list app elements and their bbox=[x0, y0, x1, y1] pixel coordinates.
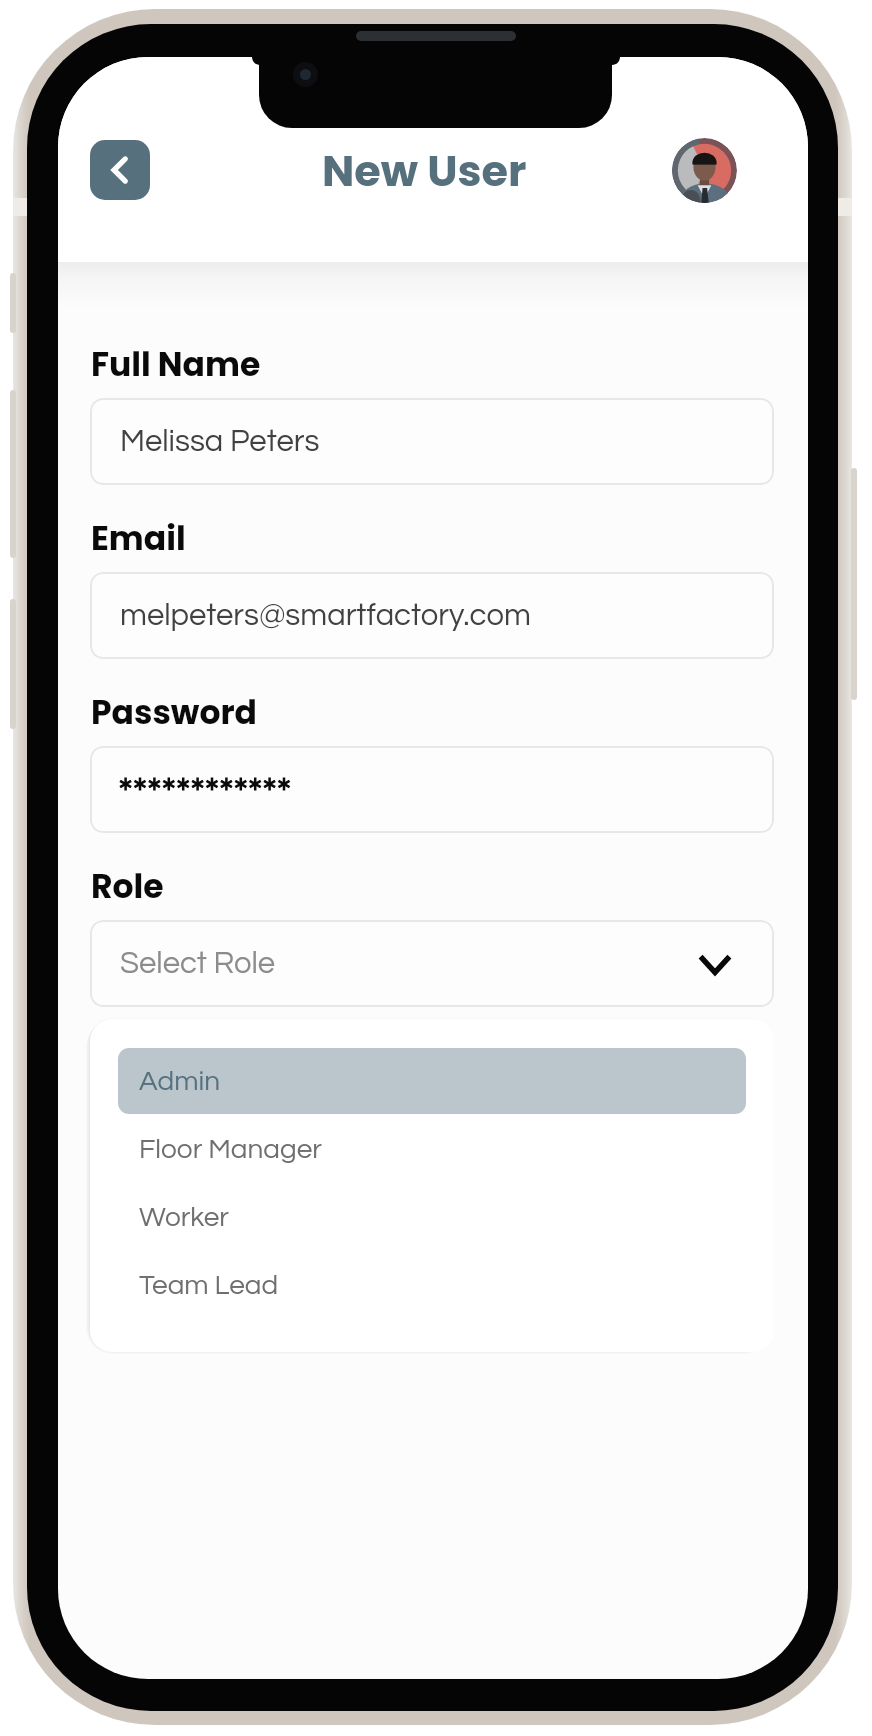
staticText: Melissa Peters bbox=[120, 426, 320, 458]
staticText: Full Name bbox=[91, 341, 261, 387]
staticText: Role bbox=[91, 863, 164, 909]
button[interactable]: Select Role bbox=[90, 920, 774, 1007]
staticText: Email bbox=[91, 515, 186, 561]
staticText: Select Role bbox=[120, 948, 275, 980]
button[interactable]: Back bbox=[90, 140, 150, 200]
button[interactable]: Admin bbox=[118, 1048, 746, 1114]
button[interactable]: Floor Manager bbox=[118, 1116, 746, 1182]
button[interactable]: Team Lead bbox=[118, 1252, 746, 1318]
staticText: melpeters@smartfactory.com bbox=[120, 600, 531, 632]
staticText: Password bbox=[91, 689, 257, 735]
staticText: Team Lead bbox=[139, 1271, 279, 1300]
staticText: Admin bbox=[139, 1067, 221, 1096]
staticText: Floor Manager bbox=[139, 1135, 322, 1164]
staticText: Worker bbox=[139, 1203, 229, 1232]
button[interactable]: Worker bbox=[118, 1184, 746, 1250]
staticText: New User bbox=[322, 141, 527, 201]
button[interactable]: Profile bbox=[672, 138, 737, 203]
